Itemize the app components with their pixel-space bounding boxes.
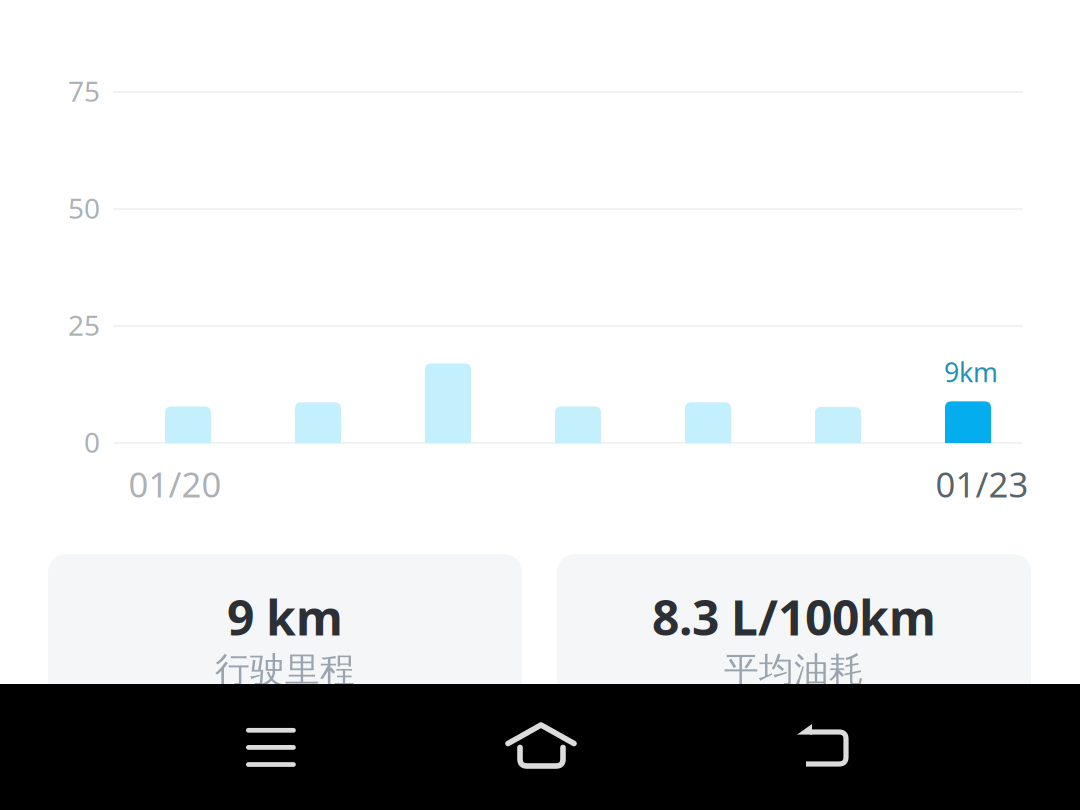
staticText: 0 [84,423,100,461]
staticText: 25 [68,306,100,344]
button[interactable]: Home [426,684,656,810]
button[interactable]: Recent apps [156,684,386,810]
staticText: 9km [944,354,998,390]
staticText: 50 [68,189,100,227]
staticText: 平均油耗 [724,649,864,691]
staticText: 75 [68,72,100,110]
button[interactable]: 9 km [48,554,522,724]
staticText: 01/23 [935,461,1028,507]
staticText: 行驶里程 [215,649,355,691]
staticText: 01/20 [128,461,221,507]
button[interactable]: 8.3 L/100km [557,554,1031,724]
staticText: 9 km [227,585,343,649]
button[interactable]: Back [707,684,937,810]
staticText: 8.3 L/100km [652,585,936,649]
